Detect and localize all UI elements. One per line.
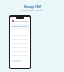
- button[interactable]: [10, 45, 30, 49]
- button[interactable]: [10, 49, 30, 53]
- staticText: Welcome back: [15, 20, 29, 23]
- button[interactable]: Welcome back: [10, 19, 30, 23]
- button[interactable]: [10, 37, 30, 41]
- button[interactable]: [10, 53, 30, 57]
- button[interactable]: [10, 41, 30, 45]
- button[interactable]: [10, 59, 30, 63]
- staticText: Manage CRM: [24, 5, 41, 9]
- staticText: Leads Calls & Deals: [21, 8, 43, 11]
- staticText: CRM Dashboard: [12, 25, 28, 28]
- button[interactable]: CRM Dashboard: [11, 24, 29, 30]
- button[interactable]: [10, 33, 30, 37]
